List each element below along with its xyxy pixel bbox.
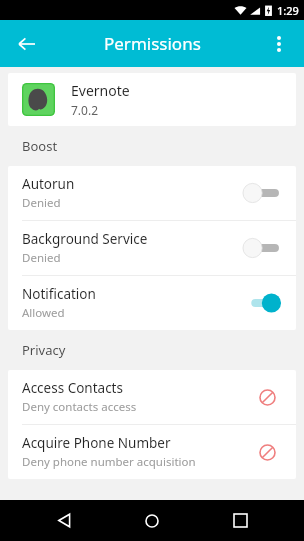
staticText: Evernote <box>71 81 130 100</box>
button[interactable]: Denied <box>252 382 282 412</box>
button[interactable]: Autorun <box>8 166 296 220</box>
button[interactable]: Back <box>40 500 88 541</box>
staticText: Access Contacts <box>22 379 123 397</box>
staticText: Deny phone number acquisition <box>22 454 196 470</box>
button[interactable]: Denied <box>252 437 282 467</box>
staticText: Denied <box>22 250 61 266</box>
staticText: 1:29 <box>277 3 299 18</box>
button[interactable]: Back <box>8 25 46 63</box>
button[interactable]: Notification on <box>242 291 282 315</box>
staticText: Allowed <box>22 305 65 321</box>
staticText: Permissions <box>104 32 201 55</box>
staticText: Autorun <box>22 175 75 193</box>
button[interactable]: Notification <box>8 276 296 330</box>
button[interactable]: Recent apps <box>216 500 264 541</box>
staticText: Acquire Phone Number <box>22 434 171 452</box>
button[interactable]: More options <box>260 25 298 63</box>
staticText: Deny contacts access <box>22 399 137 415</box>
button[interactable]: Background Service <box>8 221 296 275</box>
staticText: Boost <box>22 137 58 155</box>
button[interactable]: Evernote <box>8 73 296 126</box>
button[interactable]: Acquire Phone Number <box>8 425 296 479</box>
staticText: Notification <box>22 285 96 303</box>
staticText: Background Service <box>22 230 148 248</box>
button[interactable]: Access Contacts <box>8 370 296 424</box>
button[interactable]: Background Service off <box>242 236 282 260</box>
button[interactable]: Home <box>128 500 176 541</box>
staticText: Denied <box>22 195 61 211</box>
staticText: Privacy <box>22 341 66 359</box>
staticText: 7.0.2 <box>71 102 99 118</box>
button[interactable]: Autorun off <box>242 181 282 205</box>
